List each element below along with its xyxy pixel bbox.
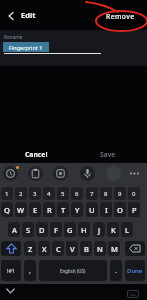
staticText: R (47, 205, 52, 215)
staticText: T (61, 205, 66, 215)
staticText: E (33, 205, 38, 215)
button[interactable]: Y (71, 202, 83, 217)
button[interactable]: . (110, 260, 122, 281)
staticText: P (132, 205, 137, 215)
button[interactable]: 2 (15, 187, 27, 200)
button[interactable] (127, 166, 143, 181)
button[interactable]: K (107, 222, 119, 237)
button[interactable]: English (US) (39, 260, 107, 281)
staticText: C (56, 244, 61, 254)
button[interactable]: X (38, 241, 50, 256)
staticText: K (111, 225, 116, 235)
staticText: U (89, 205, 95, 215)
button[interactable]: H (78, 222, 90, 237)
staticText: M (111, 244, 118, 254)
staticText: S (26, 225, 31, 235)
staticText: W (17, 205, 25, 215)
staticText: Edit (21, 10, 36, 20)
button[interactable]: 3 (29, 187, 41, 200)
button[interactable]: D (36, 222, 48, 237)
staticText: Rename (4, 34, 23, 41)
button[interactable]: 4 (43, 187, 55, 200)
staticText: B (84, 244, 89, 254)
button[interactable]: Q (1, 202, 13, 217)
staticText: H (81, 225, 87, 235)
button[interactable]: 1 (1, 187, 13, 200)
staticText: Cancel (25, 150, 48, 159)
button[interactable]: O (114, 202, 126, 217)
button[interactable]: 9 (114, 187, 126, 200)
staticText: 7 (90, 190, 94, 198)
staticText: J (98, 225, 101, 235)
button[interactable]: N (94, 241, 106, 256)
staticText: L (125, 225, 130, 235)
button[interactable] (3, 285, 17, 297)
staticText: Fingerprint 1 (9, 44, 43, 51)
button[interactable]: T (57, 202, 69, 217)
button[interactable]: U (86, 202, 98, 217)
staticText: 3 (33, 190, 37, 198)
staticText: D (39, 225, 45, 235)
button[interactable] (4, 9, 17, 22)
staticText: A (12, 225, 17, 235)
button[interactable]: J (93, 222, 105, 237)
staticText: !#1 (7, 267, 15, 274)
staticText: 2 (19, 190, 23, 198)
staticText: 4 (47, 190, 51, 198)
button[interactable] (3, 166, 18, 181)
button[interactable]: 7 (86, 187, 98, 200)
staticText: V (70, 244, 75, 254)
button[interactable]: I (100, 202, 112, 217)
staticText: , (29, 266, 31, 276)
button[interactable]: Cancel (14, 147, 59, 161)
staticText: 9 (118, 190, 122, 198)
button[interactable]: 6 (71, 187, 83, 200)
button[interactable] (127, 290, 139, 298)
button[interactable] (125, 241, 145, 256)
button[interactable] (80, 166, 95, 181)
button[interactable]: G (64, 222, 76, 237)
staticText: F (54, 225, 58, 235)
staticText: I (105, 205, 108, 215)
button[interactable]: !#1 (1, 260, 21, 281)
staticText: . (115, 266, 117, 276)
staticText: 0 (132, 190, 136, 198)
button[interactable]: Done (125, 260, 145, 281)
button[interactable]: 8 (100, 187, 112, 200)
button[interactable]: B (80, 241, 92, 256)
button[interactable]: 0 (128, 187, 140, 200)
staticText: 8 (104, 190, 108, 198)
staticText: Save (100, 150, 116, 159)
staticText: 1 (5, 190, 9, 198)
staticText: English (US) (60, 268, 86, 274)
button[interactable] (53, 166, 68, 181)
button[interactable]: A (8, 222, 20, 237)
button[interactable]: F (50, 222, 62, 237)
staticText: 6 (75, 190, 79, 198)
staticText: Y (75, 205, 80, 215)
button[interactable]: Z (24, 241, 36, 256)
staticText: G (67, 225, 73, 235)
button[interactable]: W (15, 202, 27, 217)
button[interactable]: S (22, 222, 34, 237)
button[interactable]: L (121, 222, 133, 237)
button[interactable] (28, 166, 43, 181)
staticText: 5 (61, 190, 65, 198)
staticText: N (97, 244, 103, 254)
button[interactable]: E (29, 202, 41, 217)
button[interactable]: Fingerprint 1 (3, 42, 49, 52)
button[interactable]: 5 (57, 187, 69, 200)
button[interactable]: Save (85, 147, 130, 161)
button[interactable]: , (24, 260, 36, 281)
button[interactable]: C (52, 241, 64, 256)
staticText: Z (28, 244, 33, 254)
staticText: Q (4, 205, 10, 215)
button[interactable]: M (108, 241, 120, 256)
button[interactable] (106, 166, 121, 181)
button[interactable] (1, 241, 21, 256)
button[interactable]: R (43, 202, 55, 217)
button[interactable]: P (128, 202, 140, 217)
button[interactable]: Remove (100, 11, 140, 22)
staticText: Done (127, 267, 143, 275)
button[interactable]: V (66, 241, 78, 256)
